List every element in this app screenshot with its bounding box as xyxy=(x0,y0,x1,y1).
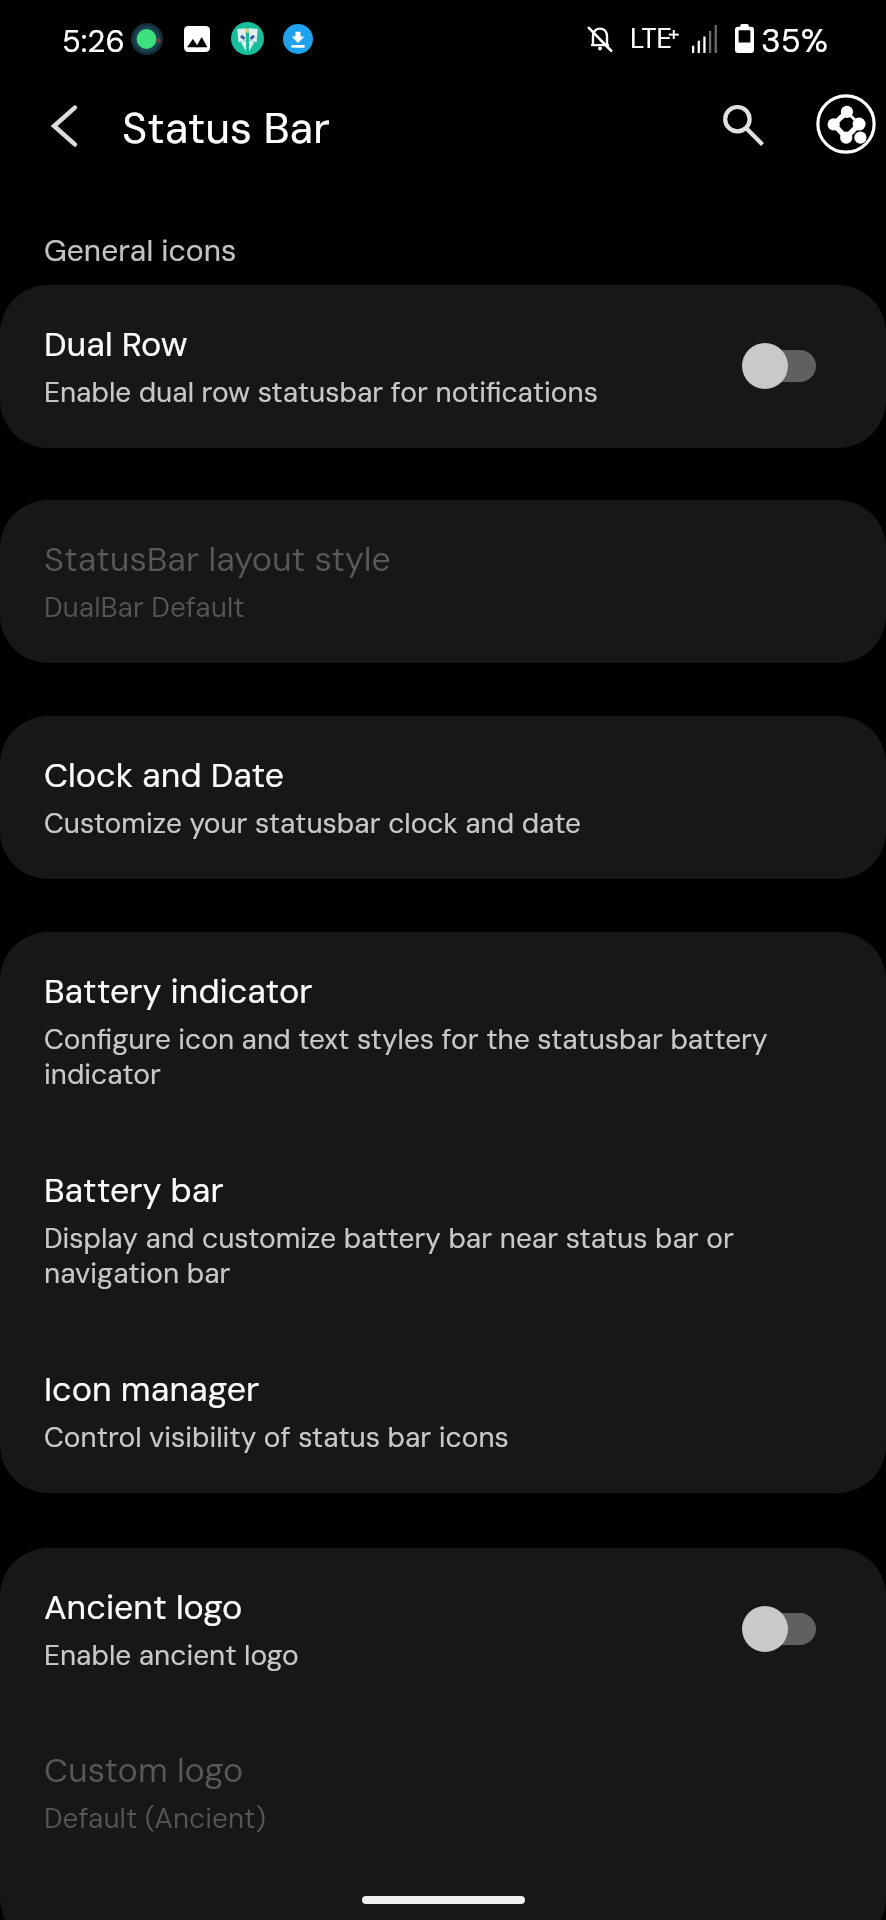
button[interactable]: Clock and Date xyxy=(0,716,886,879)
button[interactable]: Custom logo xyxy=(0,1711,886,1920)
staticText: 35% xyxy=(761,19,828,62)
staticText: Status Bar xyxy=(122,100,330,156)
button[interactable]: Ancient logo xyxy=(0,1548,886,1711)
button[interactable]: Icon manager xyxy=(0,1330,886,1493)
staticText: Battery indicator xyxy=(44,969,313,1013)
button[interactable]: StatusBar layout style xyxy=(0,500,886,663)
staticText: Icon manager xyxy=(44,1367,260,1411)
staticText: Custom logo xyxy=(44,1748,244,1792)
staticText: General icons xyxy=(44,231,237,270)
staticText: 5:26 xyxy=(62,21,125,61)
staticText: Dual Row xyxy=(44,322,188,366)
button[interactable]: Dual Row xyxy=(0,285,886,448)
staticText: StatusBar layout style xyxy=(44,537,391,581)
staticText: LTE xyxy=(630,21,672,56)
button[interactable] xyxy=(742,1605,816,1653)
button[interactable]: Battery indicator xyxy=(0,932,886,1131)
button[interactable]: Battery bar xyxy=(0,1131,886,1330)
staticText: Enable dual row statusbar for notificati… xyxy=(44,374,598,410)
staticText: Enable ancient logo xyxy=(44,1637,299,1673)
staticText: Configure icon and text styles for the s… xyxy=(44,1021,816,1093)
button[interactable]: Search xyxy=(700,82,786,168)
staticText: + xyxy=(668,20,680,47)
staticText: DualBar Default xyxy=(44,589,245,625)
button[interactable]: Ancient OS settings xyxy=(803,81,886,167)
button[interactable] xyxy=(742,342,816,390)
staticText: Default (Ancient) xyxy=(44,1800,266,1836)
staticText: Clock and Date xyxy=(44,753,285,797)
staticText: Customize your statusbar clock and date xyxy=(44,805,581,841)
button[interactable]: Back xyxy=(24,86,104,166)
staticText: Ancient logo xyxy=(44,1585,243,1629)
staticText: Display and customize battery bar near s… xyxy=(44,1220,816,1292)
staticText: Control visibility of status bar icons xyxy=(44,1419,509,1455)
staticText: Battery bar xyxy=(44,1168,224,1212)
